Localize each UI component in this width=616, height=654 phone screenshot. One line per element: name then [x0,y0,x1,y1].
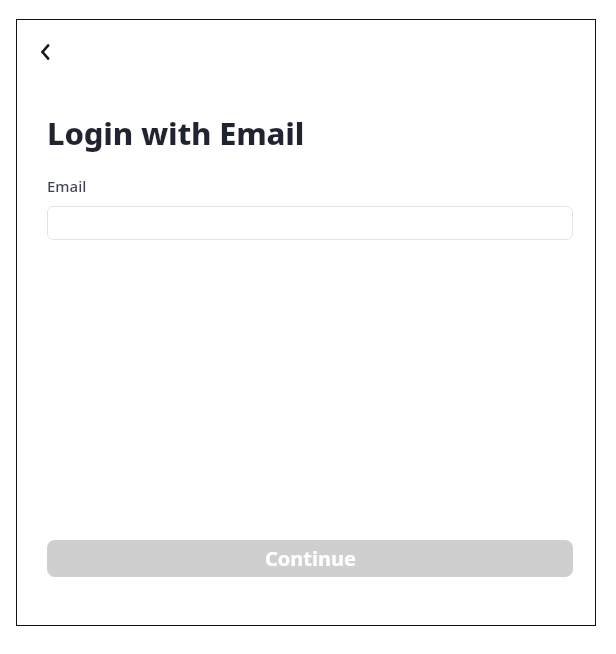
staticText: Login with Email [47,112,305,154]
button[interactable]: Back [24,30,68,74]
staticText: Email [47,176,87,196]
button[interactable] [47,206,573,240]
staticText: Continue [265,545,356,572]
button[interactable]: Continue [47,540,573,577]
